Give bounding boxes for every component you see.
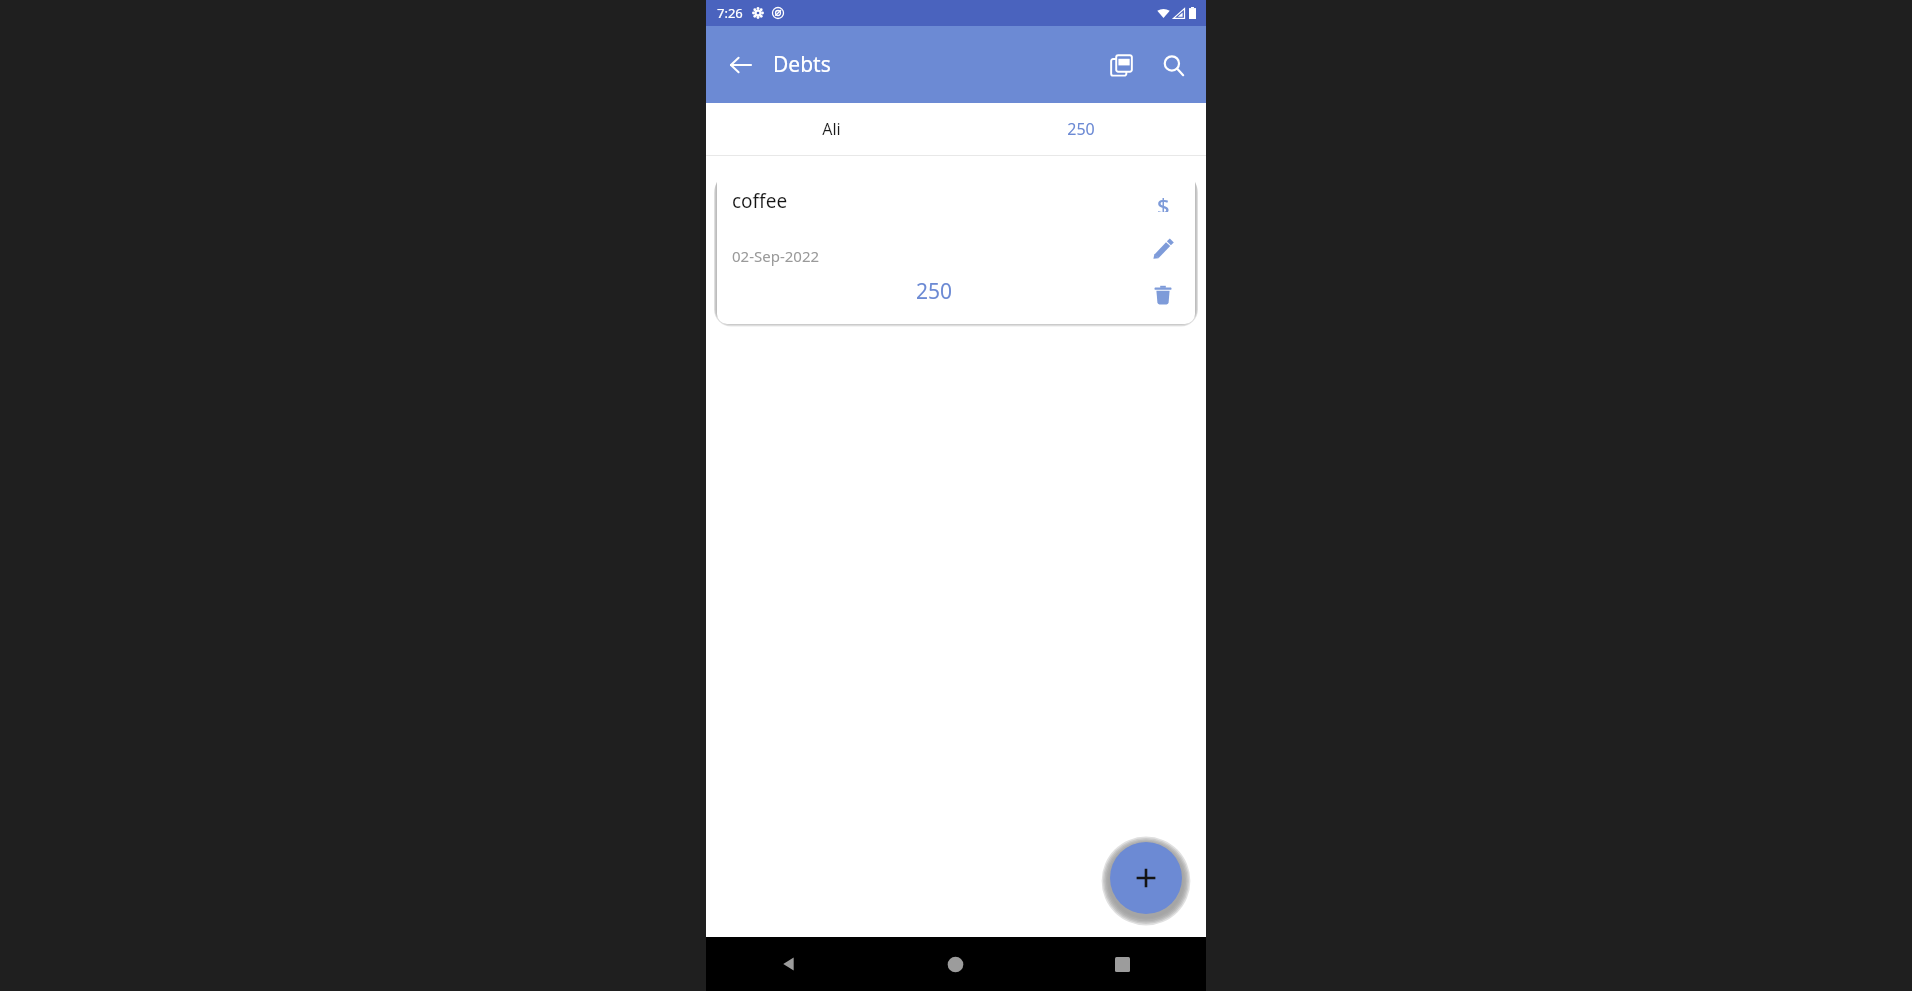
button[interactable]: Search	[1149, 41, 1197, 89]
button[interactable]: Delete	[1146, 278, 1180, 312]
staticText: Debts	[773, 50, 831, 79]
button[interactable]: Recents	[1039, 937, 1206, 991]
staticText: coffee	[732, 188, 788, 214]
staticText: 250	[1067, 118, 1095, 140]
button[interactable]: Edit	[1146, 231, 1180, 265]
staticText: Ali	[822, 118, 841, 140]
button[interactable]: coffee	[717, 168, 1195, 324]
staticText: 250	[916, 277, 953, 306]
button[interactable]: Pay	[1146, 184, 1180, 218]
button[interactable]: Back	[717, 41, 765, 89]
staticText: 02-Sep-2022	[732, 246, 820, 266]
button[interactable]: Export PDF	[1097, 41, 1145, 89]
staticText: 7:26	[717, 4, 743, 22]
staticText: $	[1157, 190, 1170, 212]
button[interactable]: Back	[706, 937, 872, 991]
button[interactable]: Ali	[706, 103, 1206, 155]
button[interactable]: Add debt	[1110, 842, 1182, 914]
button[interactable]: Home	[872, 937, 1039, 991]
